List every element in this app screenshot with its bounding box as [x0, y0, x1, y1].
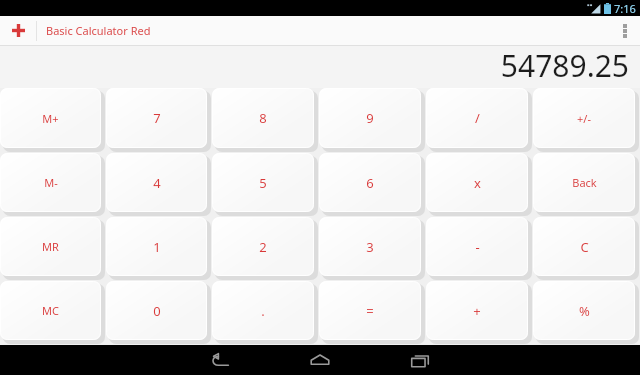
staticText: M+ [42, 111, 59, 126]
button[interactable]: 4 [106, 153, 212, 217]
staticText: = [366, 302, 374, 320]
button[interactable]: +/- [533, 88, 640, 153]
staticText: + [473, 302, 481, 320]
staticText: 6 [366, 174, 374, 192]
button[interactable]: 9 [319, 88, 426, 153]
button[interactable]: x [426, 153, 533, 217]
staticText: M- [44, 175, 58, 190]
staticText: 5 [259, 174, 267, 192]
staticText: % [579, 302, 590, 320]
staticText: MR [42, 239, 59, 254]
staticText: +/- [577, 111, 591, 126]
button[interactable]: MC [0, 281, 106, 345]
button[interactable]: More options [610, 16, 640, 45]
button[interactable]: 6 [319, 153, 426, 217]
button[interactable]: % [533, 281, 640, 345]
button[interactable]: / [426, 88, 533, 153]
staticText: . [261, 302, 265, 320]
staticText: 7 [153, 109, 161, 127]
button[interactable]: + [426, 281, 533, 345]
button[interactable]: 5 [212, 153, 319, 217]
button[interactable]: 3 [319, 217, 426, 281]
button[interactable]: . [212, 281, 319, 345]
staticText: x [474, 174, 481, 192]
staticText: 9 [366, 109, 374, 127]
button[interactable]: Back [170, 345, 270, 375]
button[interactable]: Home [270, 345, 370, 375]
staticText: 1 [153, 238, 161, 256]
button[interactable]: Recent apps [370, 345, 470, 375]
staticText: 8 [259, 109, 267, 127]
button[interactable]: 1 [106, 217, 212, 281]
button[interactable]: = [319, 281, 426, 345]
staticText: 2 [259, 238, 267, 256]
button[interactable]: - [426, 217, 533, 281]
button[interactable]: C [533, 217, 640, 281]
staticText: Basic Calculator Red [46, 23, 151, 38]
button[interactable]: M+ [0, 88, 106, 153]
staticText: 0 [153, 302, 161, 320]
button[interactable]: Back [533, 153, 640, 217]
button[interactable]: 2 [212, 217, 319, 281]
button[interactable]: Add [0, 16, 36, 45]
button[interactable]: MR [0, 217, 106, 281]
button[interactable]: 8 [212, 88, 319, 153]
button[interactable]: 0 [106, 281, 212, 345]
staticText: C [580, 238, 589, 256]
button[interactable]: 7 [106, 88, 212, 153]
staticText: Back [572, 175, 597, 190]
staticText: 4 [153, 174, 161, 192]
button[interactable]: M- [0, 153, 106, 217]
staticText: - [475, 238, 480, 256]
staticText: 3 [366, 238, 374, 256]
staticText: 54789.25 [500, 45, 629, 85]
staticText: MC [42, 303, 59, 318]
staticText: / [475, 109, 480, 127]
staticText: 7:16 [614, 1, 636, 16]
